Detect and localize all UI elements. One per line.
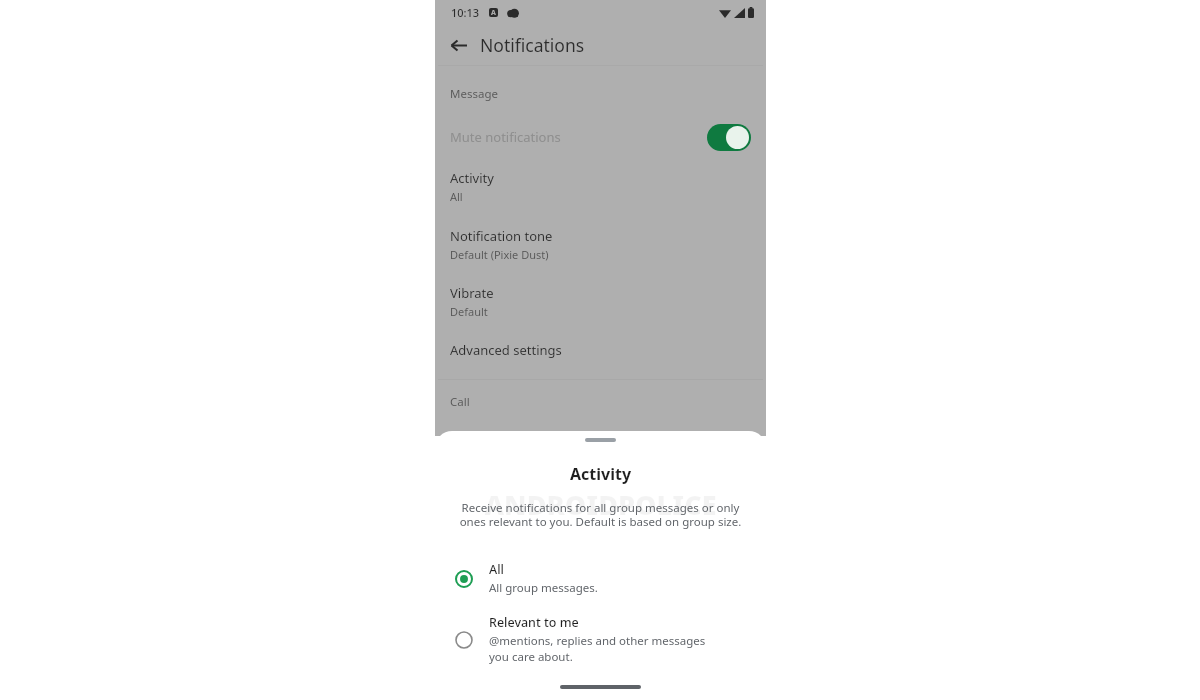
staticText: All group messages.: [489, 580, 598, 596]
button[interactable]: [585, 438, 616, 442]
staticText: Activity: [435, 463, 766, 485]
staticText: Activity: [450, 169, 494, 187]
button[interactable]: Back: [443, 30, 473, 60]
staticText: 10:13: [451, 5, 480, 20]
staticText: @mentions, replies and other messages: [489, 633, 706, 649]
staticText: Message: [450, 86, 498, 102]
staticText: Vibrate: [450, 284, 494, 302]
button[interactable]: Relevant to me: [435, 612, 766, 667]
staticText: Relevant to me: [489, 614, 579, 631]
staticText: Default: [450, 304, 488, 319]
staticText: All: [489, 561, 504, 578]
staticText: Notification tone: [450, 227, 553, 245]
staticText: Receive notifications for all group mess…: [456, 500, 745, 530]
button[interactable]: Notification tone: [435, 227, 766, 262]
staticText: Call: [450, 394, 470, 410]
button[interactable]: Mute notifications: [435, 117, 766, 157]
staticText: Advanced settings: [450, 341, 562, 359]
button[interactable]: Activity: [435, 169, 766, 204]
button[interactable]: Vibrate: [435, 284, 766, 319]
staticText: All: [450, 189, 463, 204]
staticText: Notifications: [480, 33, 585, 57]
staticText: ANDROIDPOLICE: [435, 486, 766, 523]
button[interactable]: Advanced settings: [435, 341, 766, 359]
button[interactable]: All: [435, 559, 766, 598]
staticText: Default (Pixie Dust): [450, 247, 549, 262]
staticText: you care about.: [489, 649, 573, 665]
staticText: A: [491, 8, 496, 17]
staticText: Mute notifications: [450, 128, 707, 146]
